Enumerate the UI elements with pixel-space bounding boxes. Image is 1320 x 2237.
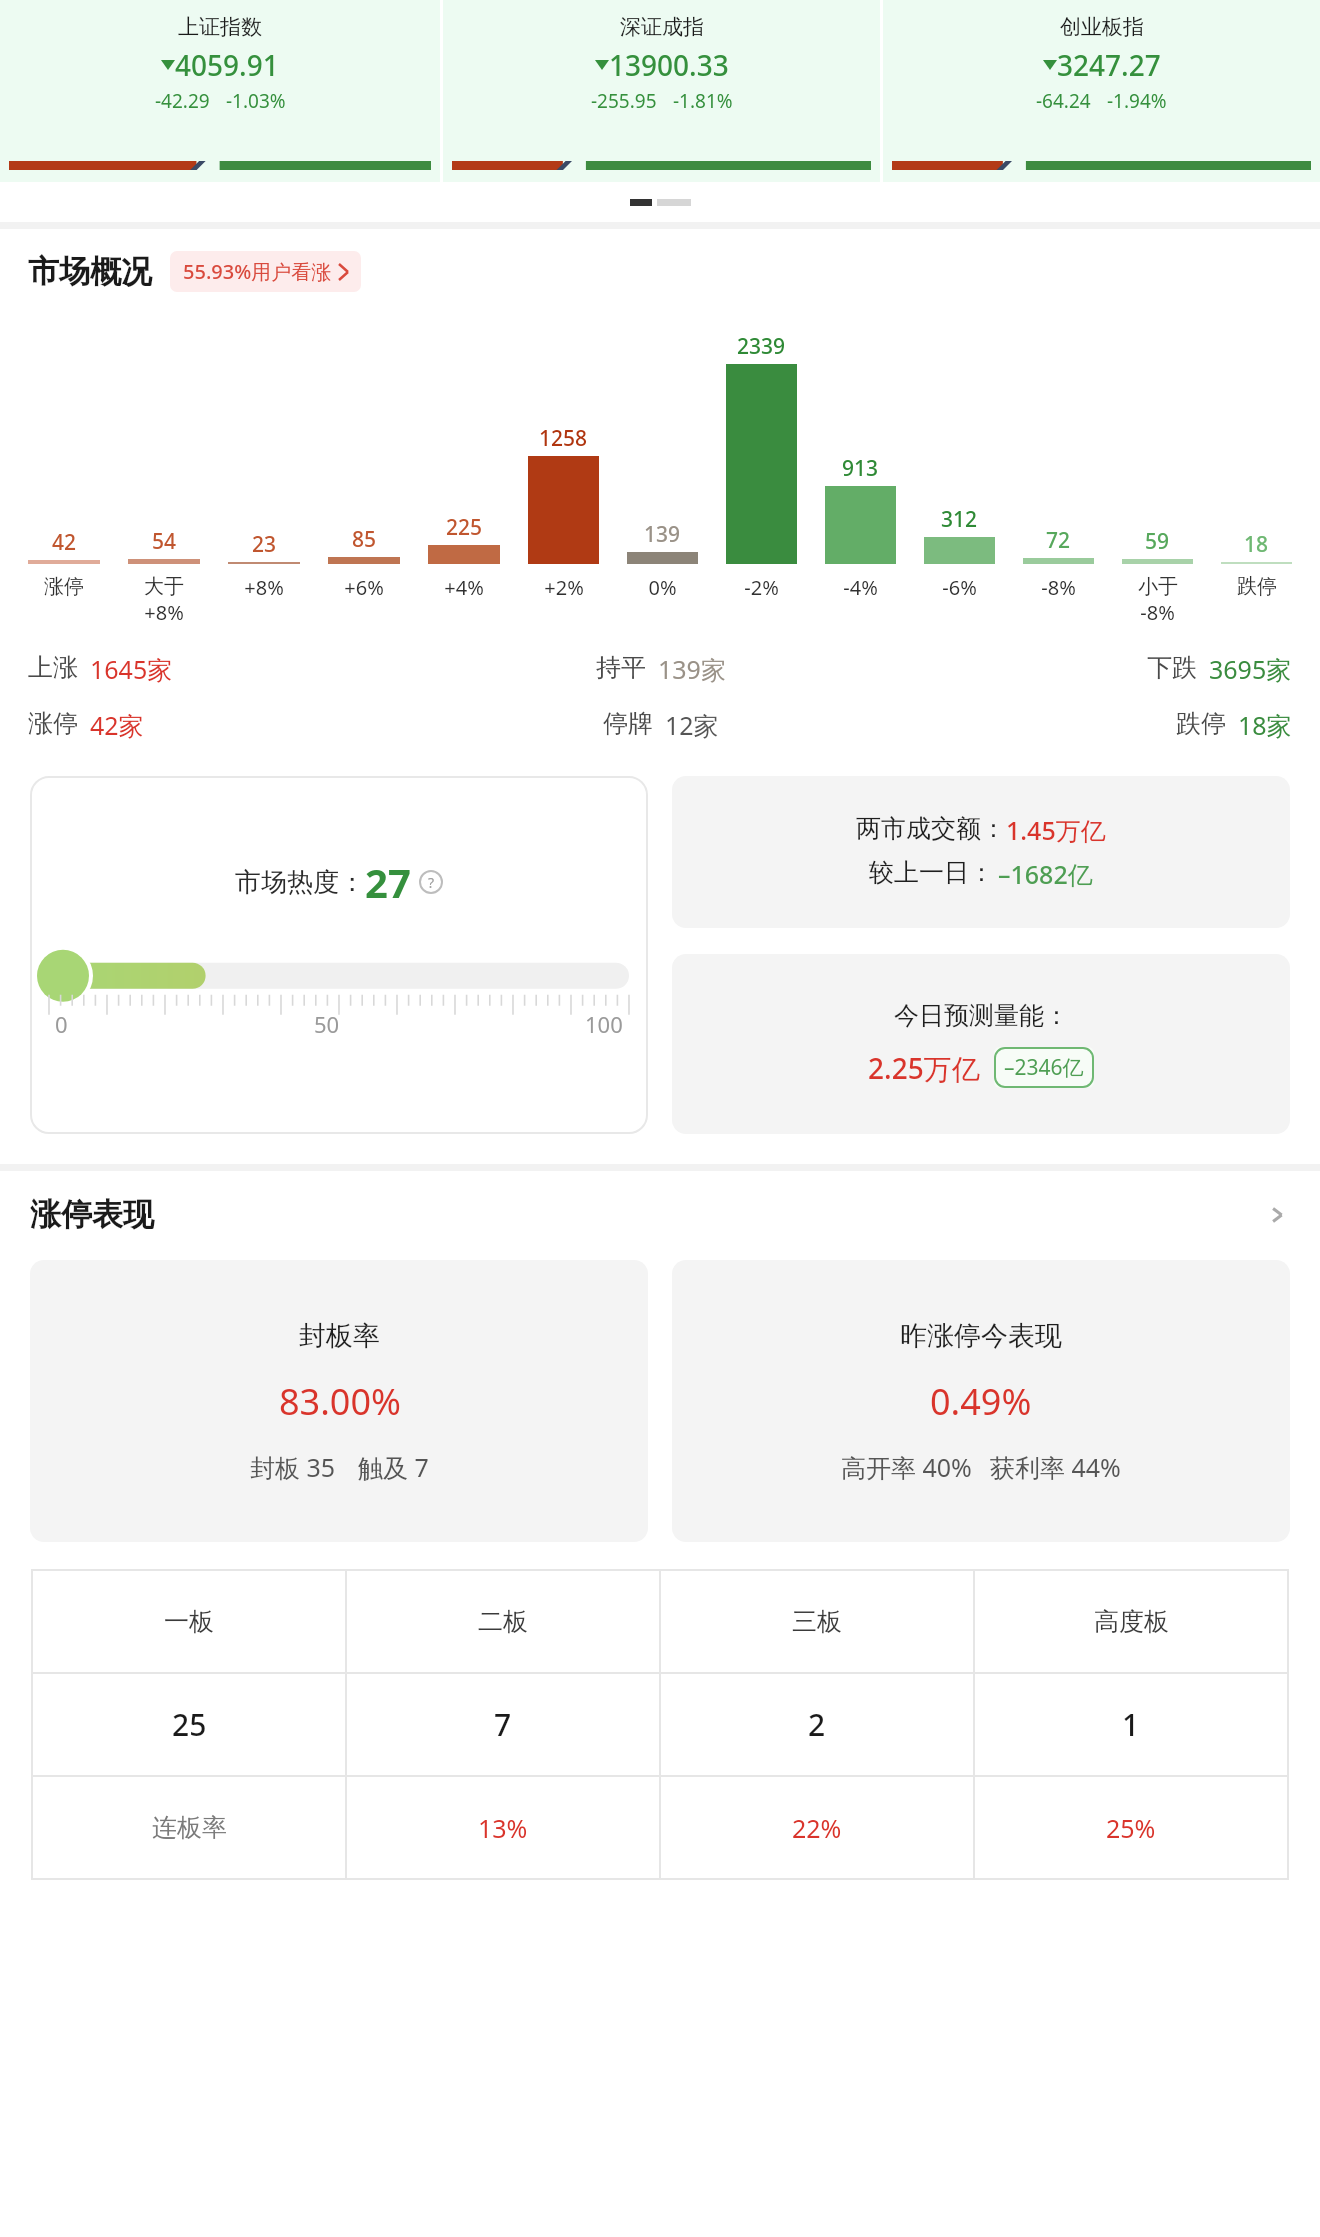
button[interactable]: 55.93%用户看涨 (183, 258, 348, 285)
staticText: 下跌 (1147, 652, 1197, 683)
staticText: 一板 (164, 1606, 214, 1637)
staticText: 139 (644, 520, 681, 549)
button[interactable]: 25 (32, 1673, 346, 1776)
staticText: -8% (1140, 599, 1175, 626)
staticText: 0% (648, 574, 677, 601)
staticText: 1645家 (90, 652, 173, 686)
staticText: 59 (1145, 527, 1170, 556)
staticText: 市场概况 (28, 252, 152, 291)
staticText: 封板率 (299, 1319, 380, 1353)
button[interactable]: 连板率 (32, 1776, 346, 1879)
staticText: 0 (55, 1009, 68, 1039)
staticText: 50 (314, 1009, 340, 1039)
staticText: 72 (1046, 526, 1071, 555)
staticText: –1682亿 (998, 857, 1093, 891)
staticText: 312 (941, 505, 978, 534)
staticText: -1.81% (673, 88, 733, 114)
staticText: 0.49% (930, 1377, 1032, 1426)
staticText: -1.94% (1107, 88, 1167, 114)
button[interactable]: 三板 (660, 1570, 974, 1673)
staticText: ? (428, 873, 435, 892)
button[interactable]: 2 (660, 1673, 974, 1776)
staticText: -42.29 (155, 88, 210, 114)
button[interactable]: 封板率 (30, 1260, 648, 1542)
staticText: -1.03% (226, 88, 286, 114)
staticText: -2% (744, 574, 779, 601)
staticText: 大于 (144, 574, 184, 599)
button[interactable]: 7 (346, 1673, 660, 1776)
button[interactable]: 市场热度： (31, 777, 647, 1133)
staticText: -4% (843, 574, 878, 601)
button[interactable]: 涨停表现 (30, 1195, 1290, 1234)
button[interactable]: 二板 (346, 1570, 660, 1673)
staticText: 18家 (1238, 708, 1292, 742)
staticText: 42 (52, 528, 77, 557)
staticText: 1258 (539, 424, 588, 453)
staticText: 3247.27 (1057, 46, 1161, 84)
staticText: 创业板指 (1060, 14, 1144, 40)
staticText: –2346亿 (1004, 1053, 1084, 1082)
button[interactable]: 13% (346, 1776, 660, 1879)
staticText: 涨停 (28, 708, 78, 739)
staticText: +6% (344, 574, 384, 601)
staticText: 100 (585, 1009, 623, 1039)
staticText: 12家 (665, 708, 719, 742)
button[interactable]: 高度板 (974, 1570, 1288, 1673)
staticText: 2 (808, 1704, 826, 1745)
staticText: 深证成指 (620, 14, 704, 40)
staticText: 7 (494, 1704, 512, 1745)
staticText: 22% (792, 1811, 842, 1845)
staticText: 小于 (1138, 574, 1178, 599)
staticText: 55.93%用户看涨 (183, 258, 332, 285)
staticText: 1 (1122, 1704, 1140, 1745)
button[interactable]: 25% (974, 1776, 1288, 1879)
button[interactable]: 昨涨停今表现 (672, 1260, 1290, 1542)
staticText: +8% (244, 574, 284, 601)
staticText: 4059.91 (175, 46, 279, 84)
button[interactable]: 今日预测量能： (672, 954, 1290, 1134)
staticText: 54 (152, 527, 177, 556)
staticText: 27 (365, 855, 411, 909)
staticText: +8% (144, 599, 184, 626)
button[interactable]: 1 (974, 1673, 1288, 1776)
button[interactable]: 一板 (32, 1570, 346, 1673)
staticText: 封板 35 (250, 1450, 336, 1484)
staticText: -64.24 (1036, 88, 1091, 114)
other: 更多 (1264, 1202, 1290, 1228)
button[interactable]: 市场概况 (28, 251, 1320, 292)
staticText: 2.25万亿 (868, 1049, 980, 1087)
staticText: 较上一日： (869, 857, 994, 888)
staticText: 225 (446, 513, 483, 542)
staticText: 23 (252, 530, 277, 559)
staticText: 上涨 (28, 652, 78, 683)
staticText: 25% (1106, 1811, 1156, 1845)
staticText: 持平 (596, 652, 646, 683)
staticText: 42家 (90, 708, 144, 742)
staticText: 913 (842, 454, 879, 483)
staticText: 触及 7 (358, 1450, 429, 1484)
staticText: 2339 (737, 332, 786, 361)
staticText: 昨涨停今表现 (900, 1319, 1062, 1353)
staticText: +4% (444, 574, 484, 601)
staticText: 连板率 (152, 1812, 227, 1843)
button[interactable]: 22% (660, 1776, 974, 1879)
staticText: 139家 (658, 652, 726, 686)
staticText: 二板 (478, 1606, 528, 1637)
staticText: 3695家 (1209, 652, 1292, 686)
staticText: 85 (352, 525, 377, 554)
staticText: 25 (172, 1704, 207, 1745)
staticText: 涨停表现 (30, 1195, 154, 1234)
staticText: 83.00% (279, 1377, 401, 1426)
staticText: -255.95 (591, 88, 657, 114)
staticText: -6% (942, 574, 977, 601)
button[interactable]: 说明 (419, 870, 443, 894)
staticText: 18 (1244, 530, 1269, 559)
staticText: 两市成交额： (856, 813, 1006, 844)
staticText: 高度板 (1094, 1606, 1169, 1637)
staticText: 三板 (792, 1606, 842, 1637)
staticText: 高开率 40% (841, 1450, 972, 1484)
staticText: 跌停 (1237, 574, 1277, 599)
staticText: 13900.33 (609, 46, 729, 84)
staticText: 停牌 (603, 708, 653, 739)
button[interactable]: 两市成交额： (672, 776, 1290, 928)
